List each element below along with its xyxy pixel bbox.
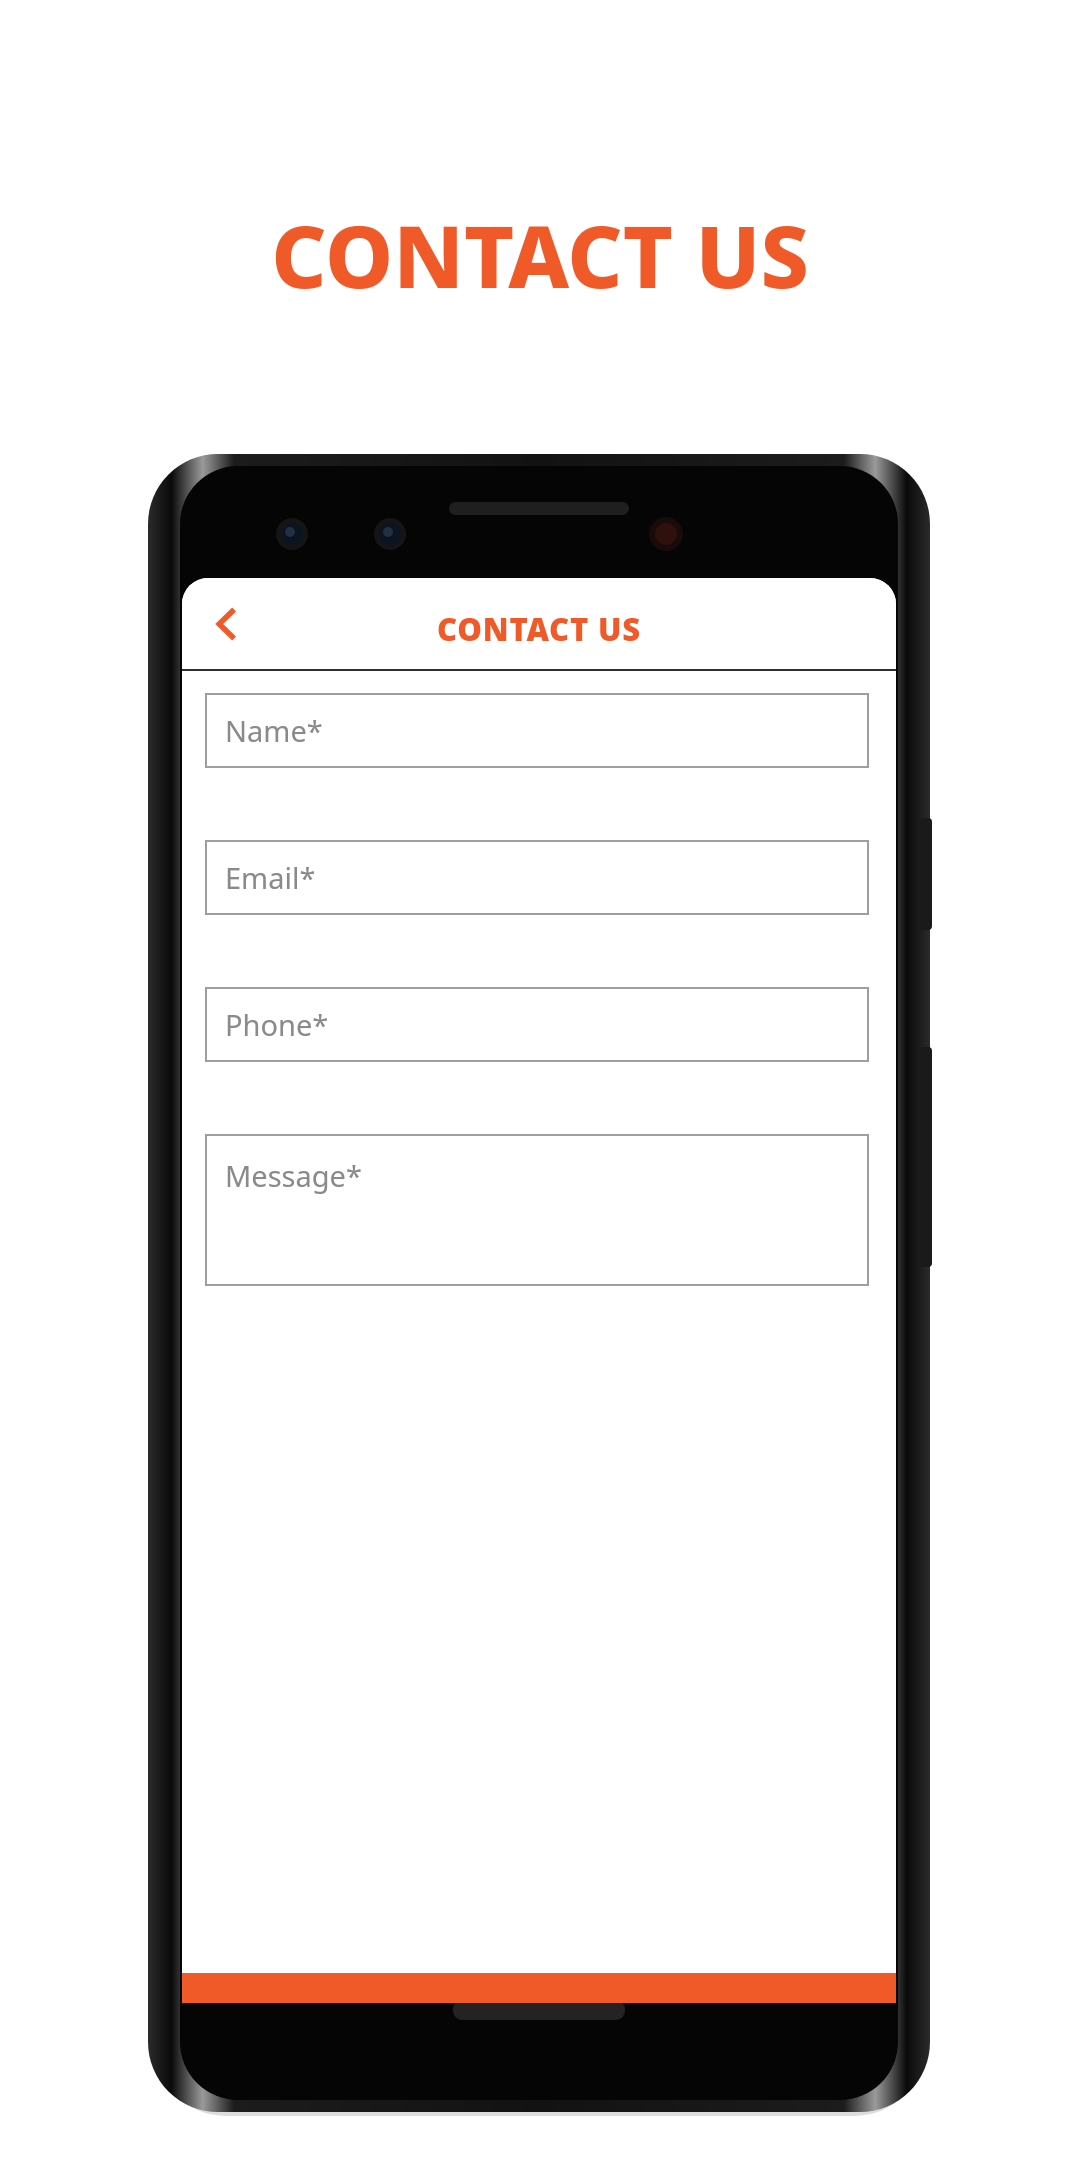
- button[interactable]: Message*: [205, 1134, 869, 1286]
- staticText: Email*: [225, 858, 316, 897]
- button[interactable]: Email*: [205, 840, 869, 915]
- staticText: Name*: [225, 711, 323, 750]
- button[interactable]: Back: [190, 588, 262, 660]
- staticText: Phone*: [225, 1005, 329, 1044]
- staticText: Message*: [225, 1156, 362, 1195]
- staticText: CONTACT US: [0, 196, 1080, 2160]
- button[interactable]: Phone*: [205, 987, 869, 1062]
- staticText: CONTACT US: [182, 608, 896, 669]
- button[interactable]: Name*: [205, 693, 869, 768]
